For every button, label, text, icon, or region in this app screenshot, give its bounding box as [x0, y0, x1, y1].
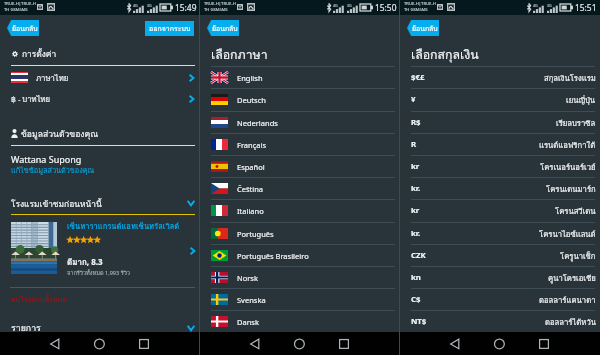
- staticText: kn: [411, 272, 421, 283]
- staticText: ดีมาก, 8.3: [67, 256, 103, 269]
- button[interactable]: kr: [400, 156, 600, 177]
- staticText: แรนด์แอฟริกาใต้: [539, 139, 596, 151]
- staticText: Português: [237, 229, 274, 239]
- button[interactable]: Nederlands: [200, 112, 400, 133]
- button[interactable]: Back: [207, 20, 239, 36]
- staticText: TH GSM/AIS: [4, 7, 28, 13]
- staticText: Deutsch: [237, 95, 266, 105]
- staticText: $€£: [411, 72, 425, 83]
- button[interactable]: kr: [400, 200, 600, 221]
- button[interactable]: NT$: [400, 311, 600, 332]
- button[interactable]: Français: [200, 134, 400, 155]
- staticText: 4G: [533, 3, 538, 8]
- staticText: R: [411, 139, 417, 150]
- button[interactable]: เซ็นทาราแกรนด์แอทเซ็นทรัลเวิลด์: [0, 220, 200, 276]
- staticText: โครเนอร์นอร์เวย์: [540, 161, 596, 173]
- button[interactable]: R$: [400, 112, 600, 133]
- staticText: 3G: [547, 3, 552, 8]
- staticText: TH GSM/AIS: [404, 7, 428, 13]
- staticText: NT$: [411, 316, 427, 327]
- staticText: kr: [411, 161, 420, 172]
- button[interactable]: Svenska: [200, 289, 400, 310]
- staticText: kr.: [411, 183, 421, 194]
- staticText: TH GSM/AIS: [204, 7, 228, 13]
- staticText: 4G: [133, 3, 138, 8]
- button[interactable]: ออกจากระบบ: [145, 21, 194, 36]
- button[interactable]: โรงแรมเข้าชมก่อนหน้านี้: [0, 194, 200, 212]
- staticText: เยนญี่ปุ่น: [566, 94, 596, 106]
- button[interactable]: Back: [7, 20, 39, 36]
- button[interactable]: Português Brasileiro: [200, 245, 400, 266]
- staticText: รายการ: [11, 321, 41, 335]
- staticText: Norsk: [237, 273, 258, 283]
- staticText: โครนสวีเดน: [555, 205, 596, 217]
- staticText: เซ็นทาราแกรนด์แอทเซ็นทรัลเวิลด์: [67, 220, 180, 232]
- button[interactable]: kn: [400, 267, 600, 288]
- staticText: Español: [237, 162, 265, 172]
- staticText: kr.: [411, 228, 421, 239]
- staticText: เลือกภาษา: [211, 45, 268, 63]
- staticText: โรงแรมเข้าชมก่อนหน้านี้: [11, 197, 102, 210]
- staticText: ย้อนกลับ: [212, 23, 238, 34]
- staticText: Wattana Supong: [11, 153, 82, 165]
- button[interactable]: ¥: [400, 89, 600, 110]
- staticText: โครูนาเช็ก: [560, 250, 596, 262]
- staticText: 3G: [147, 3, 152, 8]
- staticText: Čeština: [237, 184, 264, 194]
- staticText: TRUE-H|TRUE-H: [204, 1, 236, 7]
- button[interactable]: แก้ไขข้อมูลส่วนตัวของคุณ: [11, 165, 95, 177]
- staticText: ดอลลาร์แคนาดา: [539, 294, 596, 306]
- button[interactable]: Back: [407, 20, 439, 36]
- button[interactable]: Deutsch: [200, 89, 400, 110]
- button[interactable]: ภาษาไทย: [0, 67, 200, 88]
- staticText: C$: [411, 294, 421, 305]
- staticText: Svenska: [237, 295, 266, 305]
- staticText: เรียลบราซิล: [556, 117, 596, 129]
- button[interactable]: Italiano: [200, 200, 400, 221]
- button[interactable]: English: [200, 67, 400, 88]
- button[interactable]: Dansk: [200, 311, 400, 332]
- staticText: Português Brasileiro: [237, 251, 309, 261]
- button[interactable]: ลบโรงแรมทั้งหมด: [11, 294, 67, 305]
- staticText: คูนาโครเอเชีย: [548, 272, 596, 284]
- button[interactable]: C$: [400, 289, 600, 310]
- staticText: จากรีวิวทั้งหมด 1,993 รีวิว: [67, 269, 131, 278]
- button[interactable]: Español: [200, 156, 400, 177]
- staticText: ¥: [411, 94, 416, 105]
- staticText: 15:50: [375, 2, 397, 13]
- staticText: kr: [411, 205, 420, 216]
- staticText: ย้อนกลับ: [412, 23, 438, 34]
- staticText: สกุลเงินโรงแรม: [544, 72, 596, 84]
- button[interactable]: Português: [200, 223, 400, 244]
- button[interactable]: รายการ: [0, 319, 200, 337]
- button[interactable]: Norsk: [200, 267, 400, 288]
- staticText: 3G: [347, 3, 352, 8]
- button[interactable]: kr.: [400, 223, 600, 244]
- staticText: การตั้งค่า: [22, 47, 57, 60]
- staticText: ภาษาไทย: [36, 72, 69, 84]
- staticText: 4G: [333, 3, 338, 8]
- button[interactable]: CZK: [400, 245, 600, 266]
- button[interactable]: $€£: [400, 67, 600, 88]
- button[interactable]: kr.: [400, 178, 600, 199]
- staticText: CZK: [411, 250, 426, 261]
- staticText: ดอลลาร์ไต้หวัน: [545, 316, 596, 328]
- staticText: ข้อมูลส่วนตัวของคุณ: [21, 127, 99, 140]
- staticText: โครนาไอซ์แลนด์: [539, 228, 596, 240]
- button[interactable]: ฿ - บาทไทย: [0, 88, 200, 109]
- staticText: โครนเดนมาร์ก: [546, 183, 596, 195]
- staticText: TRUE-H|TRUE-H: [4, 1, 36, 7]
- staticText: ย้อนกลับ: [12, 23, 38, 34]
- staticText: เลือกสกุลเงิน: [411, 45, 479, 63]
- button[interactable]: Čeština: [200, 178, 400, 199]
- staticText: Français: [237, 140, 267, 150]
- button[interactable]: R: [400, 134, 600, 155]
- staticText: Italiano: [237, 206, 264, 216]
- staticText: 15:51: [575, 2, 597, 13]
- staticText: ออกจากระบบ: [149, 23, 191, 34]
- staticText: Nederlands: [237, 118, 278, 128]
- staticText: Dansk: [237, 317, 259, 327]
- staticText: R$: [411, 117, 421, 128]
- staticText: TRUE-H|TRUE-H: [404, 1, 436, 7]
- staticText: 15:49: [175, 2, 197, 13]
